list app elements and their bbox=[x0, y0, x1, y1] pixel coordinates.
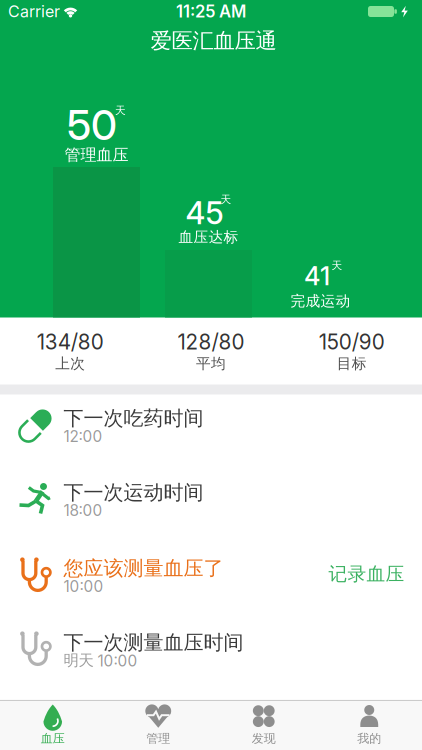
staticText: 爱医汇血压通 bbox=[150, 28, 276, 54]
staticText: 12:00 bbox=[63, 427, 102, 446]
staticText: 管理血压 bbox=[64, 145, 128, 165]
button[interactable]: 记录血压 bbox=[311, 549, 421, 599]
staticText: 10:00 bbox=[63, 577, 103, 596]
button[interactable]: 下一次测量血压时间 bbox=[0, 615, 422, 689]
staticText: 150/90 bbox=[319, 329, 385, 354]
staticText: 平均 bbox=[196, 354, 226, 372]
staticText: 45 bbox=[185, 194, 223, 231]
staticText: 血压 bbox=[41, 731, 65, 746]
staticText: 明天 10:00 bbox=[63, 651, 137, 670]
staticText: 下一次运动时间 bbox=[63, 480, 203, 505]
staticText: 血压达标 bbox=[178, 228, 238, 246]
button[interactable]: 下一次运动时间 bbox=[0, 465, 422, 539]
staticText: 记录血压 bbox=[328, 562, 404, 585]
staticText: 11:25 AM bbox=[176, 1, 246, 22]
staticText: 上次 bbox=[55, 354, 85, 372]
button[interactable]: 发现 bbox=[211, 700, 316, 750]
staticText: 下一次吃药时间 bbox=[63, 406, 203, 431]
staticText: Carrier bbox=[8, 2, 60, 21]
button[interactable]: 我的 bbox=[316, 700, 422, 750]
staticText: 128/80 bbox=[177, 329, 244, 354]
staticText: 下一次测量血压时间 bbox=[63, 630, 243, 655]
button[interactable]: 下一次吃药时间 bbox=[0, 390, 422, 464]
staticText: 天 bbox=[115, 104, 126, 117]
staticText: 41 bbox=[304, 261, 330, 291]
staticText: 目标 bbox=[337, 354, 367, 372]
staticText: 您应该测量血压了 bbox=[63, 556, 223, 581]
staticText: 18:00 bbox=[63, 501, 102, 520]
staticText: 天 bbox=[220, 193, 231, 206]
button[interactable]: 管理 bbox=[105, 700, 211, 750]
button[interactable]: 血压 bbox=[0, 700, 105, 750]
staticText: 天 bbox=[331, 259, 342, 272]
staticText: 管理 bbox=[146, 731, 170, 746]
staticText: 发现 bbox=[252, 731, 276, 746]
staticText: 我的 bbox=[357, 731, 381, 746]
button[interactable]: 您应该测量血压了 bbox=[0, 540, 310, 614]
staticText: 50 bbox=[67, 100, 117, 150]
staticText: 134/80 bbox=[37, 329, 104, 354]
staticText: 完成运动 bbox=[290, 292, 350, 310]
